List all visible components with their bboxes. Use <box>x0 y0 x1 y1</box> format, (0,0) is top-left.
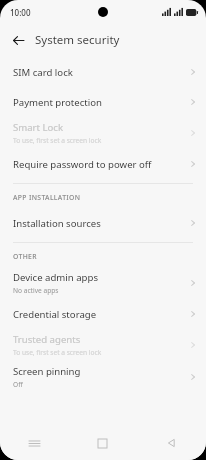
staticText: To use, first set a screen lock <box>13 136 102 145</box>
button[interactable]: Require password to power off <box>0 149 206 179</box>
staticText: OTHER <box>13 252 37 261</box>
button[interactable]: Payment protection <box>0 87 206 117</box>
staticText: APP INSTALLATION <box>13 193 81 202</box>
button[interactable]: Back <box>6 28 30 52</box>
staticText: Require password to power off <box>13 158 152 171</box>
staticText: Off <box>13 380 23 389</box>
staticText: System security <box>35 32 120 48</box>
staticText: Installation sources <box>13 217 101 230</box>
staticText: To use, first set a screen lock <box>13 348 102 357</box>
button[interactable]: SIM card lock <box>0 57 206 87</box>
button[interactable]: Credential storage <box>0 299 206 329</box>
button[interactable]: Screen pinning <box>0 361 206 393</box>
staticText: 10:00 <box>10 7 31 18</box>
button[interactable]: Smart Lock <box>0 117 206 149</box>
button[interactable]: Back <box>137 426 206 460</box>
staticText: Screen pinning <box>13 365 81 378</box>
button[interactable]: Recent apps <box>0 426 68 460</box>
button[interactable]: Installation sources <box>0 208 206 238</box>
button[interactable]: Device admin apps <box>0 267 206 299</box>
staticText: Credential storage <box>13 308 97 321</box>
staticText: Trusted agents <box>13 333 81 346</box>
button[interactable]: Trusted agents <box>0 329 206 361</box>
staticText: Payment protection <box>13 96 102 109</box>
staticText: Smart Lock <box>13 121 64 134</box>
staticText: SIM card lock <box>13 66 73 79</box>
button[interactable]: Home <box>68 426 137 460</box>
staticText: No active apps <box>13 286 59 295</box>
staticText: Device admin apps <box>13 271 99 284</box>
